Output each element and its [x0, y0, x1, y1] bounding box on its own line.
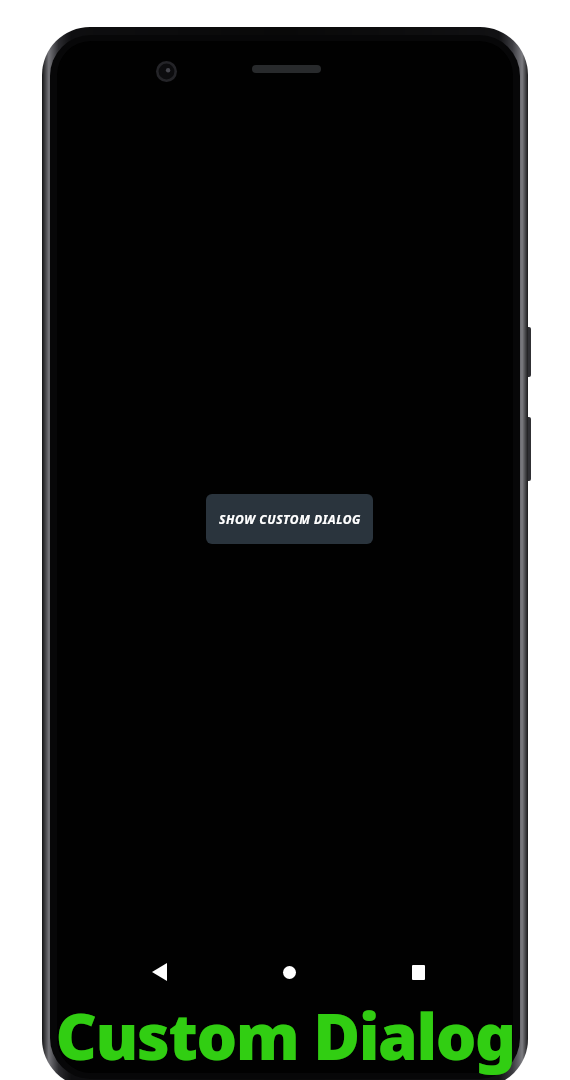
button[interactable]: Home: [260, 949, 318, 995]
staticText: Custom Dialog: [55, 992, 515, 1079]
staticText: SHOW CUSTOM DIALOG: [219, 511, 361, 527]
button[interactable]: Recent apps: [389, 949, 447, 995]
button[interactable]: SHOW CUSTOM DIALOG: [206, 494, 373, 544]
button[interactable]: Back: [130, 949, 188, 995]
